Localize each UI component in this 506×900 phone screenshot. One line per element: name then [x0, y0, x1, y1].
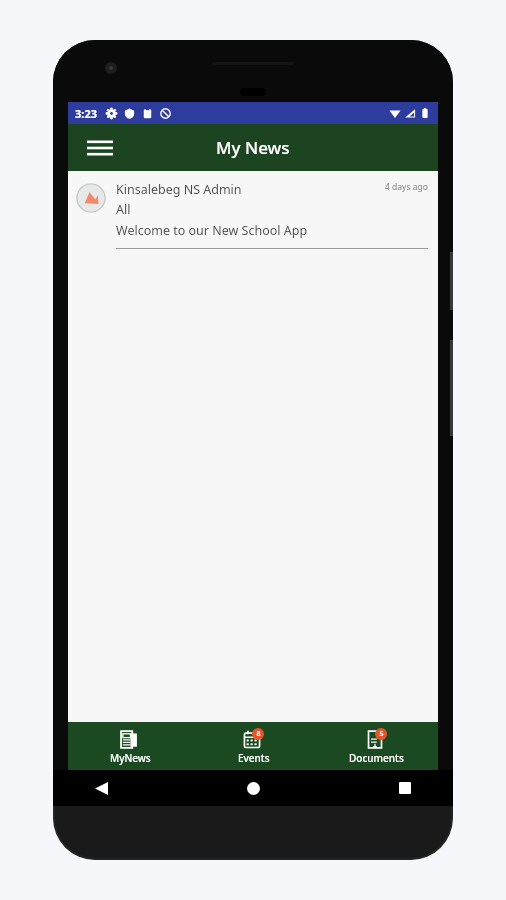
staticText: 8: [256, 729, 261, 739]
staticText: 4 days ago: [385, 181, 428, 193]
button[interactable]: 5: [315, 722, 438, 770]
button[interactable]: Kinsalebeg NS Admin: [68, 171, 438, 249]
staticText: Events: [238, 751, 270, 765]
staticText: All: [116, 201, 131, 218]
button[interactable]: Back: [83, 770, 119, 806]
button[interactable]: Recent apps: [387, 770, 423, 806]
button[interactable]: Home: [235, 770, 271, 806]
button[interactable]: 8: [192, 722, 315, 770]
staticText: Welcome to our New School App: [116, 222, 308, 239]
staticText: Documents: [349, 751, 404, 765]
staticText: 3:23: [75, 106, 97, 121]
button[interactable]: MyNews: [68, 722, 192, 770]
staticText: Kinsalebeg NS Admin: [116, 181, 385, 198]
button[interactable]: Open navigation menu: [78, 126, 122, 170]
staticText: MyNews: [110, 751, 151, 765]
staticText: 5: [379, 729, 384, 739]
staticText: My News: [216, 136, 290, 159]
